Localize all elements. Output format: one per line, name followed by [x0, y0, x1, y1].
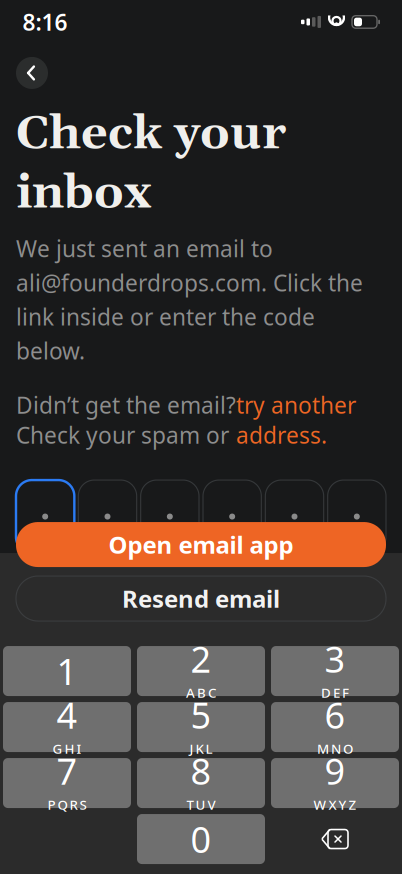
staticText: GHI — [52, 740, 81, 757]
staticText: 2 — [190, 635, 211, 683]
button[interactable]: Code digit — [265, 480, 324, 553]
staticText: WXYZ — [313, 796, 356, 813]
staticText: 0 — [190, 815, 211, 863]
button[interactable]: 0 — [137, 814, 265, 864]
staticText: Didn’t get the email? Check your spam or — [16, 390, 236, 450]
button[interactable]: Delete — [271, 814, 399, 864]
button[interactable]: 7 — [3, 758, 131, 808]
button[interactable]: 8 — [137, 758, 265, 808]
staticText: We just sent an email to ali@founderdrop… — [16, 233, 363, 366]
button[interactable]: Resend email — [16, 576, 386, 621]
button[interactable]: 1 — [3, 646, 131, 696]
button[interactable]: Code digit — [16, 480, 74, 553]
staticText: PQRS — [47, 796, 86, 813]
staticText: 4 — [56, 691, 77, 739]
staticText: 8 — [190, 747, 211, 795]
staticText: 8:16 — [22, 7, 67, 37]
staticText: Check your inbox — [16, 105, 286, 223]
staticText: Open email app — [108, 529, 293, 560]
staticText: 6 — [324, 691, 345, 739]
staticText: 1 — [56, 647, 77, 695]
staticText: try another address. — [236, 390, 356, 450]
staticText: 3 — [324, 635, 345, 683]
button[interactable]: 6 — [271, 702, 399, 752]
button[interactable]: Code digit — [203, 480, 261, 553]
button[interactable]: Code digit — [141, 480, 199, 553]
staticText: 5 — [190, 691, 211, 739]
button[interactable]: Back — [16, 57, 48, 89]
staticText: TUV — [186, 796, 215, 813]
button[interactable]: 4 — [3, 702, 131, 752]
staticText: JKL — [189, 740, 212, 757]
button[interactable]: Code digit — [328, 480, 386, 553]
staticText: Resend email — [122, 583, 280, 614]
button[interactable]: Open email app — [16, 522, 386, 567]
button[interactable]: 9 — [271, 758, 399, 808]
button[interactable]: try another address. — [236, 390, 356, 450]
staticText: 9 — [324, 747, 345, 795]
staticText: DEF — [321, 684, 349, 701]
button[interactable]: 3 — [271, 646, 399, 696]
button[interactable]: 2 — [137, 646, 265, 696]
button[interactable]: Code digit — [78, 480, 137, 553]
staticText: ABC — [186, 684, 216, 701]
staticText: 7 — [56, 747, 77, 795]
button[interactable]: 5 — [137, 702, 265, 752]
staticText: MNO — [317, 740, 353, 757]
